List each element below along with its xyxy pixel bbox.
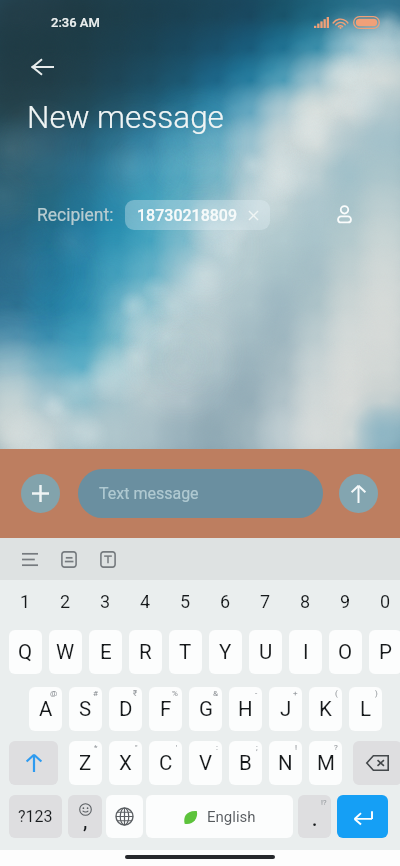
button[interactable]: Choose contact [328, 199, 360, 231]
button[interactable]: P [369, 630, 400, 674]
staticText: R [139, 640, 152, 664]
button[interactable]: G [189, 687, 222, 731]
button[interactable]: Y [209, 630, 242, 674]
staticText: % [172, 689, 178, 698]
button[interactable]: 7 [249, 583, 282, 619]
staticText: D [119, 697, 133, 721]
staticText: N [278, 751, 293, 775]
button[interactable]: S [69, 687, 102, 731]
staticText: Y [219, 640, 232, 664]
button[interactable]: T [169, 630, 202, 674]
staticText: Text message [99, 484, 199, 503]
button[interactable]: Comma [68, 795, 102, 838]
staticText: ! [295, 743, 298, 752]
staticText: 18730218809 [137, 206, 238, 225]
staticText: 3 [100, 591, 111, 612]
button[interactable]: ?123 [9, 795, 62, 838]
staticText: 5 [180, 591, 191, 612]
button[interactable]: Period [298, 795, 331, 838]
button[interactable]: Q [9, 630, 42, 674]
staticText: L [360, 697, 372, 721]
staticText: ₹ [133, 689, 138, 698]
button[interactable]: I [289, 630, 322, 674]
staticText: 9 [340, 591, 351, 612]
button[interactable]: 0 [369, 583, 400, 619]
staticText: 4 [140, 591, 151, 612]
button[interactable]: B [229, 741, 262, 785]
button[interactable]: 8 [289, 583, 322, 619]
button[interactable]: V [189, 741, 222, 785]
button[interactable]: K [309, 687, 342, 731]
button[interactable]: C [149, 741, 182, 785]
staticText: F [160, 697, 172, 721]
button[interactable]: Send [339, 474, 378, 513]
button[interactable]: 3 [89, 583, 122, 619]
button[interactable]: Change keyboard language [106, 795, 143, 838]
staticText: ?123 [18, 807, 53, 826]
button[interactable]: U [249, 630, 282, 674]
staticText: Z [79, 751, 92, 775]
button[interactable]: 9 [329, 583, 362, 619]
staticText: ? [334, 743, 338, 752]
button[interactable]: E [89, 630, 122, 674]
button[interactable]: 2 [49, 583, 82, 619]
button[interactable]: English [146, 795, 293, 838]
staticText: A [39, 697, 53, 721]
button[interactable]: Add attachment [21, 474, 60, 513]
button[interactable]: J [269, 687, 302, 731]
button[interactable]: X [109, 741, 142, 785]
button[interactable]: W [49, 630, 82, 674]
button[interactable]: F [149, 687, 182, 731]
button[interactable]: Z [69, 741, 102, 785]
staticText: S [79, 697, 92, 721]
staticText: 2 [60, 591, 71, 612]
button[interactable]: 5 [169, 583, 202, 619]
button[interactable]: Backspace [353, 741, 400, 785]
staticText: T [179, 640, 192, 664]
staticText: V [199, 751, 213, 775]
staticText: English [207, 808, 256, 826]
staticText: 2:36 AM [51, 15, 100, 30]
button[interactable]: 4 [129, 583, 162, 619]
staticText: J [280, 697, 292, 721]
staticText: G [199, 697, 213, 721]
button[interactable]: Text format [95, 546, 121, 572]
staticText: 6 [220, 591, 231, 612]
button[interactable]: H [229, 687, 262, 731]
staticText: @ [50, 689, 58, 698]
staticText: H [238, 697, 253, 721]
button[interactable]: Enter [337, 795, 388, 838]
button[interactable]: 1 [9, 583, 42, 619]
button[interactable]: Shift [9, 741, 58, 785]
staticText: K [319, 697, 332, 721]
button[interactable]: Bulleted list [17, 546, 43, 572]
staticText: ' [176, 743, 178, 752]
staticText: P [379, 640, 392, 664]
button[interactable]: Text message [78, 469, 323, 518]
staticText: . [312, 809, 318, 830]
button[interactable]: Back [25, 50, 59, 84]
staticText: I [303, 640, 309, 664]
button[interactable]: A [29, 687, 62, 731]
staticText: ( [335, 689, 338, 698]
staticText: " [135, 743, 138, 752]
button[interactable]: 18730218809 [125, 200, 270, 230]
staticText: !? [321, 798, 327, 807]
staticText: E [100, 640, 112, 664]
button[interactable]: 6 [209, 583, 242, 619]
button[interactable]: R [129, 630, 162, 674]
button[interactable]: O [329, 630, 362, 674]
staticText: # [93, 689, 98, 698]
button[interactable]: M [309, 741, 342, 785]
button[interactable]: D [109, 687, 142, 731]
staticText: X [119, 751, 132, 775]
staticText: & [213, 689, 218, 698]
staticText: - [255, 689, 258, 698]
button[interactable]: L [349, 687, 382, 731]
staticText: 1 [20, 591, 31, 612]
button[interactable]: Paragraph style [56, 546, 82, 572]
staticText: 0 [380, 591, 391, 612]
button[interactable]: N [269, 741, 302, 785]
staticText: M [317, 751, 335, 775]
staticText: : [216, 743, 218, 752]
